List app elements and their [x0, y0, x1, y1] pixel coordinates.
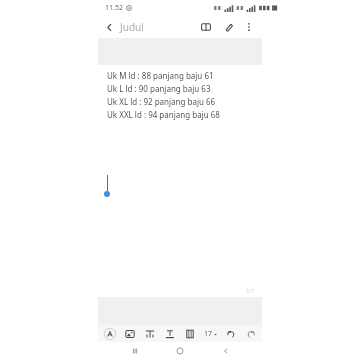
button[interactable]: Back	[98, 16, 120, 38]
button[interactable]: 17	[201, 325, 219, 342]
staticText: Uk M ld : 88 panjang baju 61	[107, 70, 214, 81]
button[interactable]: Attach	[217, 16, 239, 38]
staticText: Uk XXL ld : 94 panjang baju 68	[107, 109, 220, 120]
button[interactable]: Insert image	[121, 325, 138, 342]
button[interactable]: Insert table	[181, 325, 198, 342]
staticText: 17	[204, 329, 213, 339]
button[interactable]: Bullet list	[141, 325, 158, 342]
staticText: Uk L ld : 90 panjang baju 63	[107, 83, 211, 94]
button[interactable]: Text format	[161, 325, 178, 342]
staticText: 11.52	[105, 3, 123, 13]
button[interactable]: Reading view	[195, 16, 217, 38]
button[interactable]: Redo	[242, 325, 259, 342]
staticText: Uk XL ld : 92 panjang baju 66	[107, 96, 216, 107]
button[interactable]: Back	[217, 342, 235, 360]
staticText: 1/1	[246, 287, 256, 295]
button[interactable]: Undo	[222, 325, 239, 342]
button[interactable]: Recents	[126, 342, 144, 360]
staticText: Judul	[120, 20, 144, 34]
button[interactable]: More options	[239, 17, 259, 37]
button[interactable]: Home	[171, 342, 189, 360]
button[interactable]: Text style	[101, 325, 118, 342]
